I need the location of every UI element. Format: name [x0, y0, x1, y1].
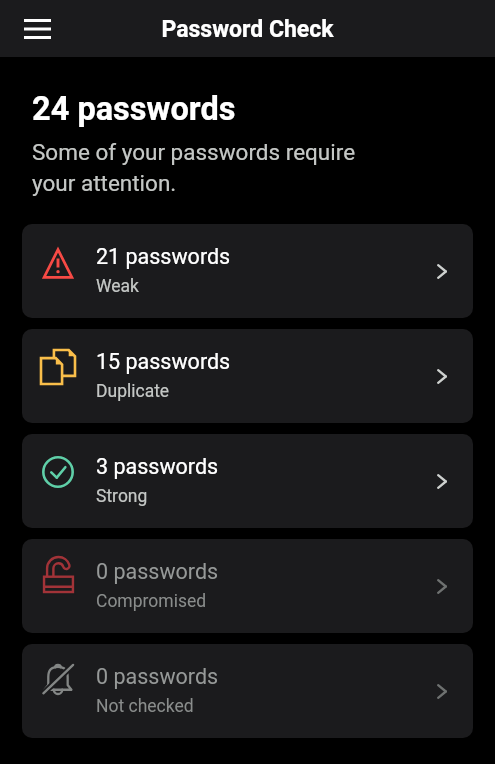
- button[interactable]: 3 passwords: [22, 434, 473, 528]
- staticText: 15 passwords: [96, 349, 231, 374]
- button[interactable]: 0 passwords: [22, 539, 473, 633]
- staticText: 0 passwords: [96, 664, 219, 689]
- staticText: 21 passwords: [96, 244, 231, 269]
- button[interactable]: 21 passwords: [22, 224, 473, 318]
- staticText: 0 passwords: [96, 559, 219, 584]
- button[interactable]: 0 passwords: [22, 644, 473, 738]
- staticText: Duplicate: [96, 381, 170, 402]
- staticText: Some of your passwords require your atte…: [32, 139, 372, 196]
- staticText: 24 passwords: [32, 90, 236, 128]
- staticText: Strong: [96, 486, 148, 507]
- staticText: Not checked: [96, 696, 194, 717]
- staticText: Compromised: [96, 591, 207, 612]
- staticText: 3 passwords: [96, 454, 219, 479]
- button[interactable]: Open navigation menu: [12, 3, 63, 54]
- staticText: Password Check: [161, 16, 334, 43]
- staticText: Weak: [96, 276, 139, 297]
- button[interactable]: 15 passwords: [22, 329, 473, 423]
